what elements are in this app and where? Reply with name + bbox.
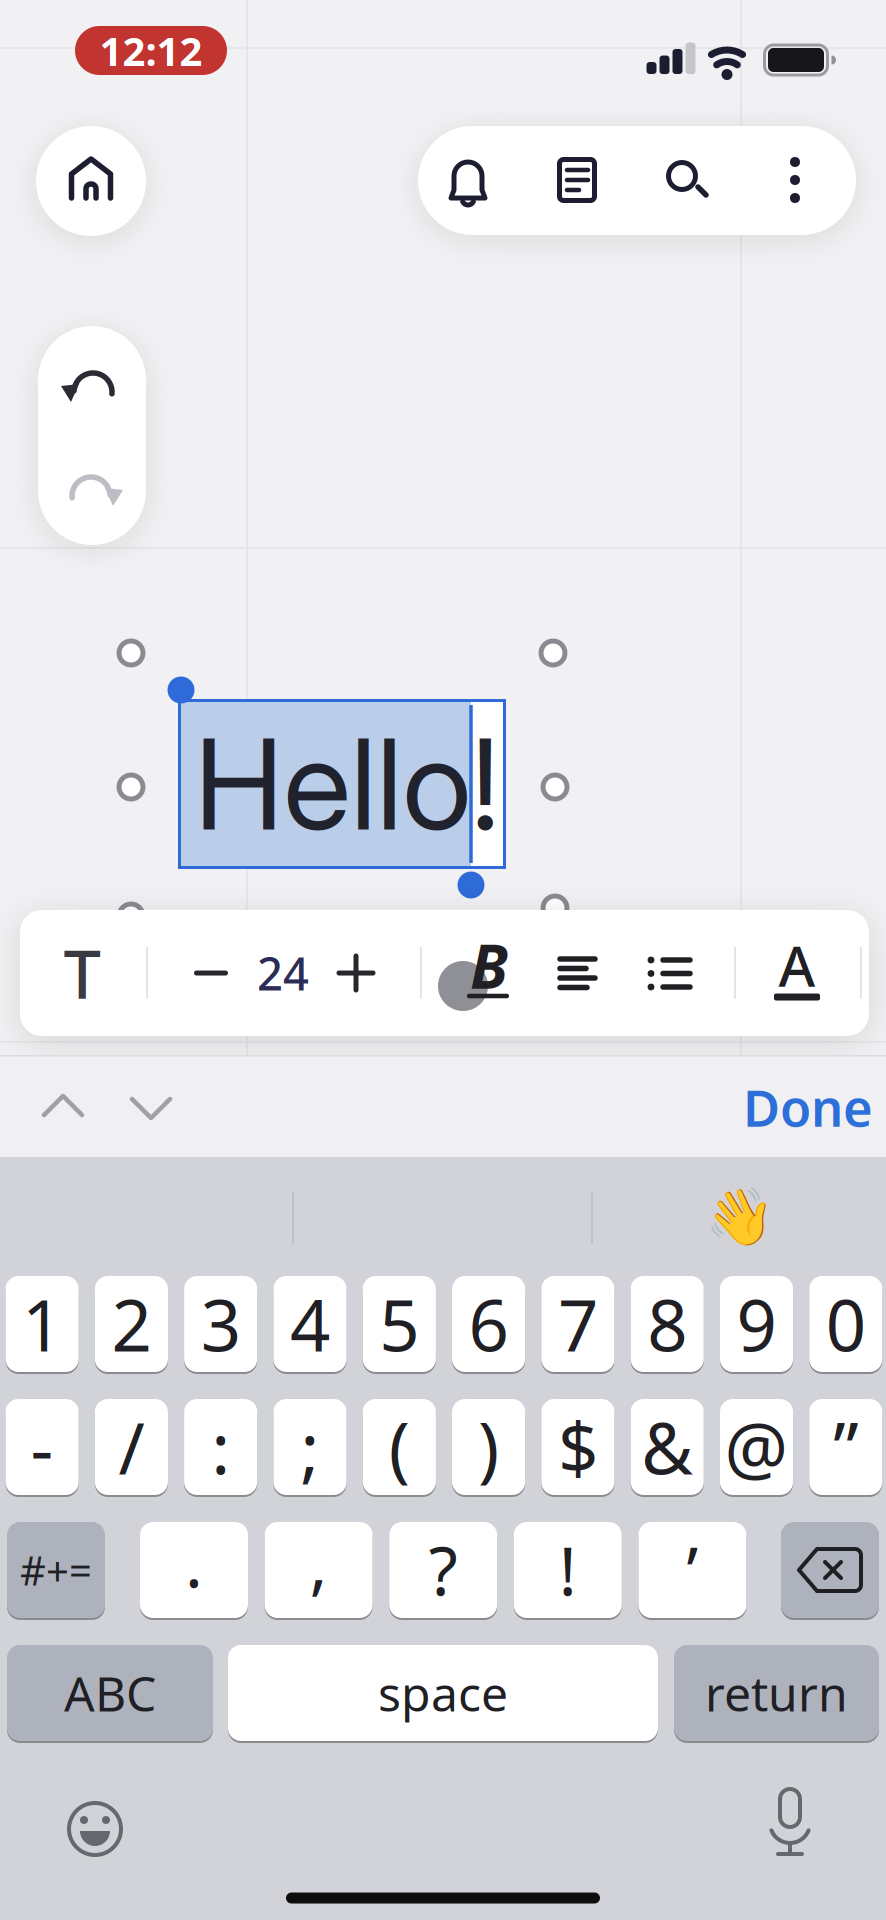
button[interactable]: ’ [638,1520,746,1620]
staticText: ) [478,1400,499,1494]
staticText: 3 [201,1277,241,1371]
staticText: ABC [64,1661,156,1725]
staticText: return [705,1661,848,1725]
button[interactable]: Next field [128,1093,174,1123]
button[interactable]: , [265,1520,373,1620]
button[interactable]: Notes [532,130,622,230]
staticText: #+= [20,1543,92,1596]
button[interactable]: - [5,1397,79,1497]
button[interactable]: Text color [759,923,835,1023]
button[interactable]: 7 [541,1274,614,1374]
staticText: T [63,929,100,1017]
staticText: & [641,1400,693,1494]
staticText: 4 [290,1277,330,1371]
staticText: ! [559,1526,577,1614]
button[interactable]: ( [363,1397,436,1497]
button[interactable]: Done [743,1073,873,1141]
button[interactable]: Increase font size [321,928,391,1018]
staticText: Hello! [194,708,499,860]
button[interactable]: $ [541,1397,614,1497]
staticText: 6 [469,1277,509,1371]
button[interactable]: ; [273,1397,347,1497]
staticText: 1 [22,1277,62,1371]
staticText: 7 [558,1277,598,1371]
staticText: 9 [736,1277,776,1371]
button[interactable]: Bulleted list [629,928,709,1018]
button[interactable]: space [228,1643,658,1743]
button[interactable]: Font size [248,928,318,1018]
button[interactable]: Text style [42,923,122,1023]
staticText: , [310,1518,328,1606]
button[interactable]: ” [809,1397,882,1497]
staticText: - [31,1400,54,1494]
staticText: : [211,1400,230,1494]
button[interactable]: @ [720,1397,793,1497]
staticText: . [185,1518,203,1606]
button[interactable]: Redo [47,444,137,534]
button[interactable]: Decrease font size [176,928,246,1018]
button[interactable]: 4 [273,1274,347,1374]
staticText: 8 [647,1277,687,1371]
staticText: Done [743,1073,873,1141]
staticText: ? [429,1526,458,1614]
button[interactable]: Bold [451,921,527,1021]
staticText: / [118,1400,144,1494]
button[interactable]: ? [389,1520,497,1620]
button[interactable]: 6 [452,1274,525,1374]
staticText: @ [724,1400,788,1494]
staticText: ; [300,1400,319,1494]
staticText: ( [389,1400,410,1494]
button[interactable]: Home [36,126,146,236]
staticText: space [378,1661,508,1725]
button[interactable]: Previous field [40,1090,86,1120]
button[interactable]: Dictate [760,1786,820,1858]
button[interactable]: & [631,1397,704,1497]
button[interactable]: 9 [720,1274,793,1374]
staticText: A [778,928,815,1002]
staticText: ’ [686,1526,698,1614]
button[interactable]: 8 [631,1274,704,1374]
button[interactable]: / [95,1397,168,1497]
button[interactable]: More [750,130,840,230]
button[interactable]: 1 [5,1274,79,1374]
staticText: 2 [111,1277,151,1371]
staticText: 24 [257,943,309,1003]
button[interactable]: Search [641,130,731,230]
staticText: 0 [826,1277,866,1371]
button[interactable]: Align text [537,928,617,1018]
button[interactable]: 3 [184,1274,257,1374]
staticText: 5 [379,1277,419,1371]
button[interactable]: Undo [47,340,137,430]
button[interactable]: 5 [363,1274,436,1374]
button[interactable]: : [184,1397,257,1497]
button[interactable]: 2 [95,1274,168,1374]
staticText: 12:12 [99,24,202,77]
staticText: 👋 [705,1185,775,1249]
button[interactable]: More symbols [7,1520,105,1620]
staticText: ” [833,1400,858,1494]
button[interactable]: 👋 [595,1167,885,1267]
button[interactable]: . [140,1520,248,1620]
button[interactable]: return [674,1643,879,1743]
button[interactable]: ) [452,1397,525,1497]
button[interactable]: Notifications [423,130,513,230]
button[interactable]: 0 [809,1274,882,1374]
staticText: $ [558,1400,598,1494]
button[interactable]: Delete [781,1520,879,1620]
button[interactable]: Letters [7,1643,213,1743]
button[interactable]: Recording 12:12 [75,26,227,75]
button[interactable]: ! [514,1520,622,1620]
staticText: B [470,924,508,1006]
button[interactable]: Emoji [65,1799,125,1859]
